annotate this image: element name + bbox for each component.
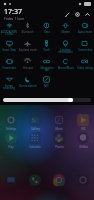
staticText: NFC [44, 84, 49, 88]
button[interactable]: Torch [37, 38, 56, 56]
staticText: Screen recording [3, 84, 15, 90]
staticText: Location information [58, 48, 73, 54]
button[interactable]: GitHub [77, 132, 89, 149]
button[interactable]: Settings [72, 9, 82, 19]
button[interactable]: Music [53, 114, 65, 131]
button[interactable]: Calculator [29, 132, 41, 149]
staticText: Screenshot [78, 48, 92, 52]
button[interactable]: Airplane mode [18, 38, 37, 56]
staticText: Airplane mode [19, 48, 37, 52]
button[interactable]: Phone [29, 174, 41, 186]
button[interactable]: Photos [53, 132, 65, 149]
staticText: Hotspot [23, 66, 33, 70]
button[interactable]: Hotspot [18, 56, 37, 74]
staticText: VLC [81, 127, 86, 131]
button[interactable]: Auto-rotate [75, 20, 94, 38]
staticText: Settings [6, 127, 16, 131]
staticText: Video calling [77, 66, 93, 70]
button[interactable]: Navigation bar [37, 56, 56, 74]
staticText: Photos [55, 145, 64, 149]
button[interactable]: Collapse [82, 9, 92, 19]
button[interactable]: Do not disturb [18, 74, 37, 92]
staticText: Vibrate [61, 30, 70, 34]
button[interactable]: NFC [37, 74, 56, 92]
staticText: Bluetooth [21, 30, 34, 34]
button[interactable]: Edit [62, 9, 72, 19]
button[interactable]: Screenshot [0, 56, 18, 74]
staticText: Screenshot [2, 66, 16, 70]
button[interactable]: Screenshot [75, 38, 94, 56]
button[interactable]: ACTION-WIFI 1-5GHz [0, 20, 18, 38]
button[interactable]: Mirror/Music [56, 56, 75, 74]
button[interactable]: Chrome [53, 174, 65, 186]
button[interactable]: Camera [77, 174, 89, 186]
staticText: Smart View [2, 48, 16, 52]
button[interactable]: Bluetooth [18, 20, 37, 38]
button[interactable]: Vibrate [56, 20, 75, 38]
staticText: Do not disturb [19, 84, 37, 88]
button[interactable]: Messages [5, 174, 17, 186]
staticText: GitHub [79, 145, 88, 149]
staticText: 17:37 [4, 7, 22, 17]
staticText: Auto-rotate [78, 30, 92, 34]
button[interactable]: Smart View [0, 38, 18, 56]
staticText: Calculator [29, 145, 41, 149]
button[interactable]: VLC [77, 114, 89, 131]
button[interactable]: Location information [56, 38, 75, 56]
staticText: Torch [43, 48, 50, 52]
staticText: Navigation bar [40, 66, 54, 72]
button[interactable]: Gallery [29, 114, 41, 131]
staticText: Play Store [5, 145, 17, 149]
staticText: Music [55, 127, 63, 131]
staticText: Mirror/Music [58, 66, 74, 70]
staticText: Friday, 1 June [4, 17, 24, 20]
button[interactable]: Settings [5, 114, 17, 131]
button[interactable]: Data [37, 20, 56, 38]
staticText: Data [44, 30, 50, 34]
button[interactable]: Screen recording [0, 74, 18, 92]
staticText: ACTION-WIFI 1-5GHz [1, 30, 17, 36]
button[interactable]: Video calling [75, 56, 94, 74]
staticText: Gallery [31, 127, 40, 131]
button[interactable]: Play Store [5, 132, 17, 149]
